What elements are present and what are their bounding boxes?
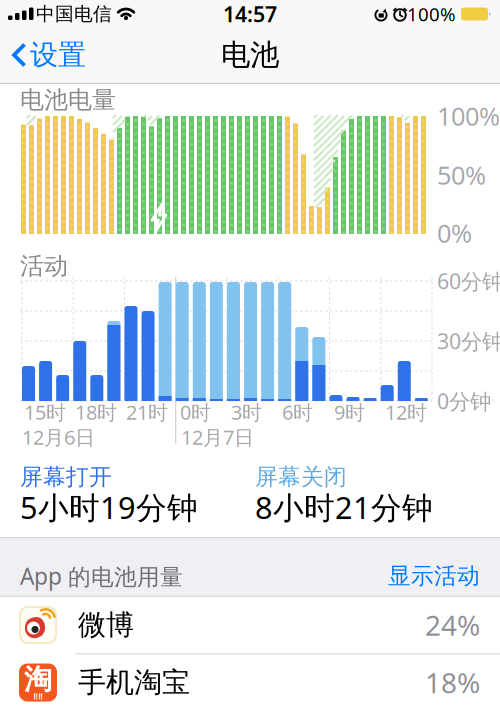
button[interactable]: 显示活动 [360,559,480,593]
staticText: 12月7日 [181,424,254,450]
button[interactable]: 微博 [0,596,500,653]
staticText: 100% [407,2,456,26]
staticText: 淘 [24,662,52,697]
staticText: 18% [425,664,480,701]
staticText: 6时 [282,399,313,425]
staticText: 5小时19分钟 [20,487,198,527]
staticText: 50% [437,158,486,192]
staticText: 0% [437,216,472,250]
staticText: !! !! [33,691,42,702]
staticText: 显示活动 [388,562,480,590]
staticText: 电池 [221,37,279,73]
button[interactable]: 淘 [0,654,500,711]
staticText: 设置 [30,38,86,72]
staticText: 18时 [75,399,117,425]
staticText: 0分钟 [437,387,491,415]
staticText: 屏幕打开 [20,463,112,491]
staticText: 15时 [24,399,66,425]
staticText: 12时 [385,399,427,425]
button[interactable]: 返回设置 [12,37,88,73]
staticText: 60分钟 [437,267,500,295]
staticText: 中国电信 [36,2,112,25]
staticText: 30分钟 [437,327,500,355]
staticText: 3时 [231,399,262,425]
staticText: 8小时21分钟 [255,487,433,527]
staticText: 9时 [334,399,365,425]
staticText: App 的电池用量 [20,561,183,591]
staticText: 24% [425,606,480,644]
staticText: 0时 [180,399,211,425]
staticText: 12月6日 [22,424,95,450]
staticText: 100% [437,99,500,133]
staticText: 活动 [20,251,68,281]
staticText: 14:57 [223,0,277,28]
staticText: 屏幕关闭 [255,463,347,491]
staticText: 电池电量 [20,85,116,115]
staticText: 微博 [78,608,134,642]
staticText: 手机淘宝 [78,665,190,700]
staticText: 21时 [126,399,168,425]
